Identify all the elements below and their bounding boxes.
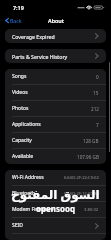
staticText: 128 GB bbox=[83, 138, 99, 144]
button[interactable]: Applications bbox=[5, 117, 106, 132]
button[interactable]: Wi-Fi Address bbox=[5, 170, 106, 185]
staticText: Videos bbox=[12, 89, 28, 96]
staticText: Capacity bbox=[12, 137, 32, 144]
staticText: Bluetooth bbox=[12, 190, 36, 197]
staticText: Songs bbox=[12, 73, 27, 80]
staticText: 3.80.02 bbox=[84, 207, 99, 213]
staticText: Back bbox=[10, 17, 22, 24]
staticText: 7:19 bbox=[13, 4, 24, 11]
staticText: Available bbox=[12, 153, 34, 160]
button[interactable]: Songs bbox=[5, 69, 106, 84]
staticText: Parts & Service History bbox=[12, 53, 68, 60]
staticText: Applications bbox=[12, 121, 41, 128]
staticText: Photos bbox=[12, 105, 29, 112]
staticText: Wi-Fi Address bbox=[12, 174, 44, 181]
staticText: 64:6D:2F:22:C0:E2 bbox=[64, 175, 99, 181]
staticText: 0 bbox=[96, 74, 99, 80]
button[interactable]: Bluetooth bbox=[5, 186, 106, 201]
button[interactable]: Available bbox=[5, 149, 106, 164]
staticText: Coverage Expired bbox=[12, 33, 55, 40]
staticText: 64:6D:2F:1C:F0:88 bbox=[64, 191, 99, 197]
button[interactable]: Coverage Expired bbox=[5, 29, 106, 43]
staticText: 7 bbox=[96, 122, 99, 128]
button[interactable]: SEID bbox=[5, 218, 106, 233]
button[interactable]: Back bbox=[3, 15, 24, 26]
button[interactable]: Videos bbox=[5, 85, 106, 100]
button[interactable]: Capacity bbox=[5, 133, 106, 148]
button[interactable]: Modem Firmware bbox=[5, 202, 106, 217]
button[interactable]: EID bbox=[5, 234, 106, 240]
staticText: Modem Firmware bbox=[12, 206, 54, 213]
staticText: السوق المفتوح bbox=[11, 186, 100, 202]
staticText: 107.96 GB bbox=[77, 154, 99, 160]
staticText: SEID bbox=[12, 222, 23, 229]
staticText: 212 bbox=[91, 106, 99, 112]
staticText: About bbox=[48, 17, 64, 24]
button[interactable]: Photos bbox=[5, 101, 106, 116]
staticText: 15 bbox=[93, 90, 99, 96]
button[interactable]: Parts & Service History bbox=[5, 49, 106, 63]
staticText: opensooq bbox=[36, 203, 76, 214]
